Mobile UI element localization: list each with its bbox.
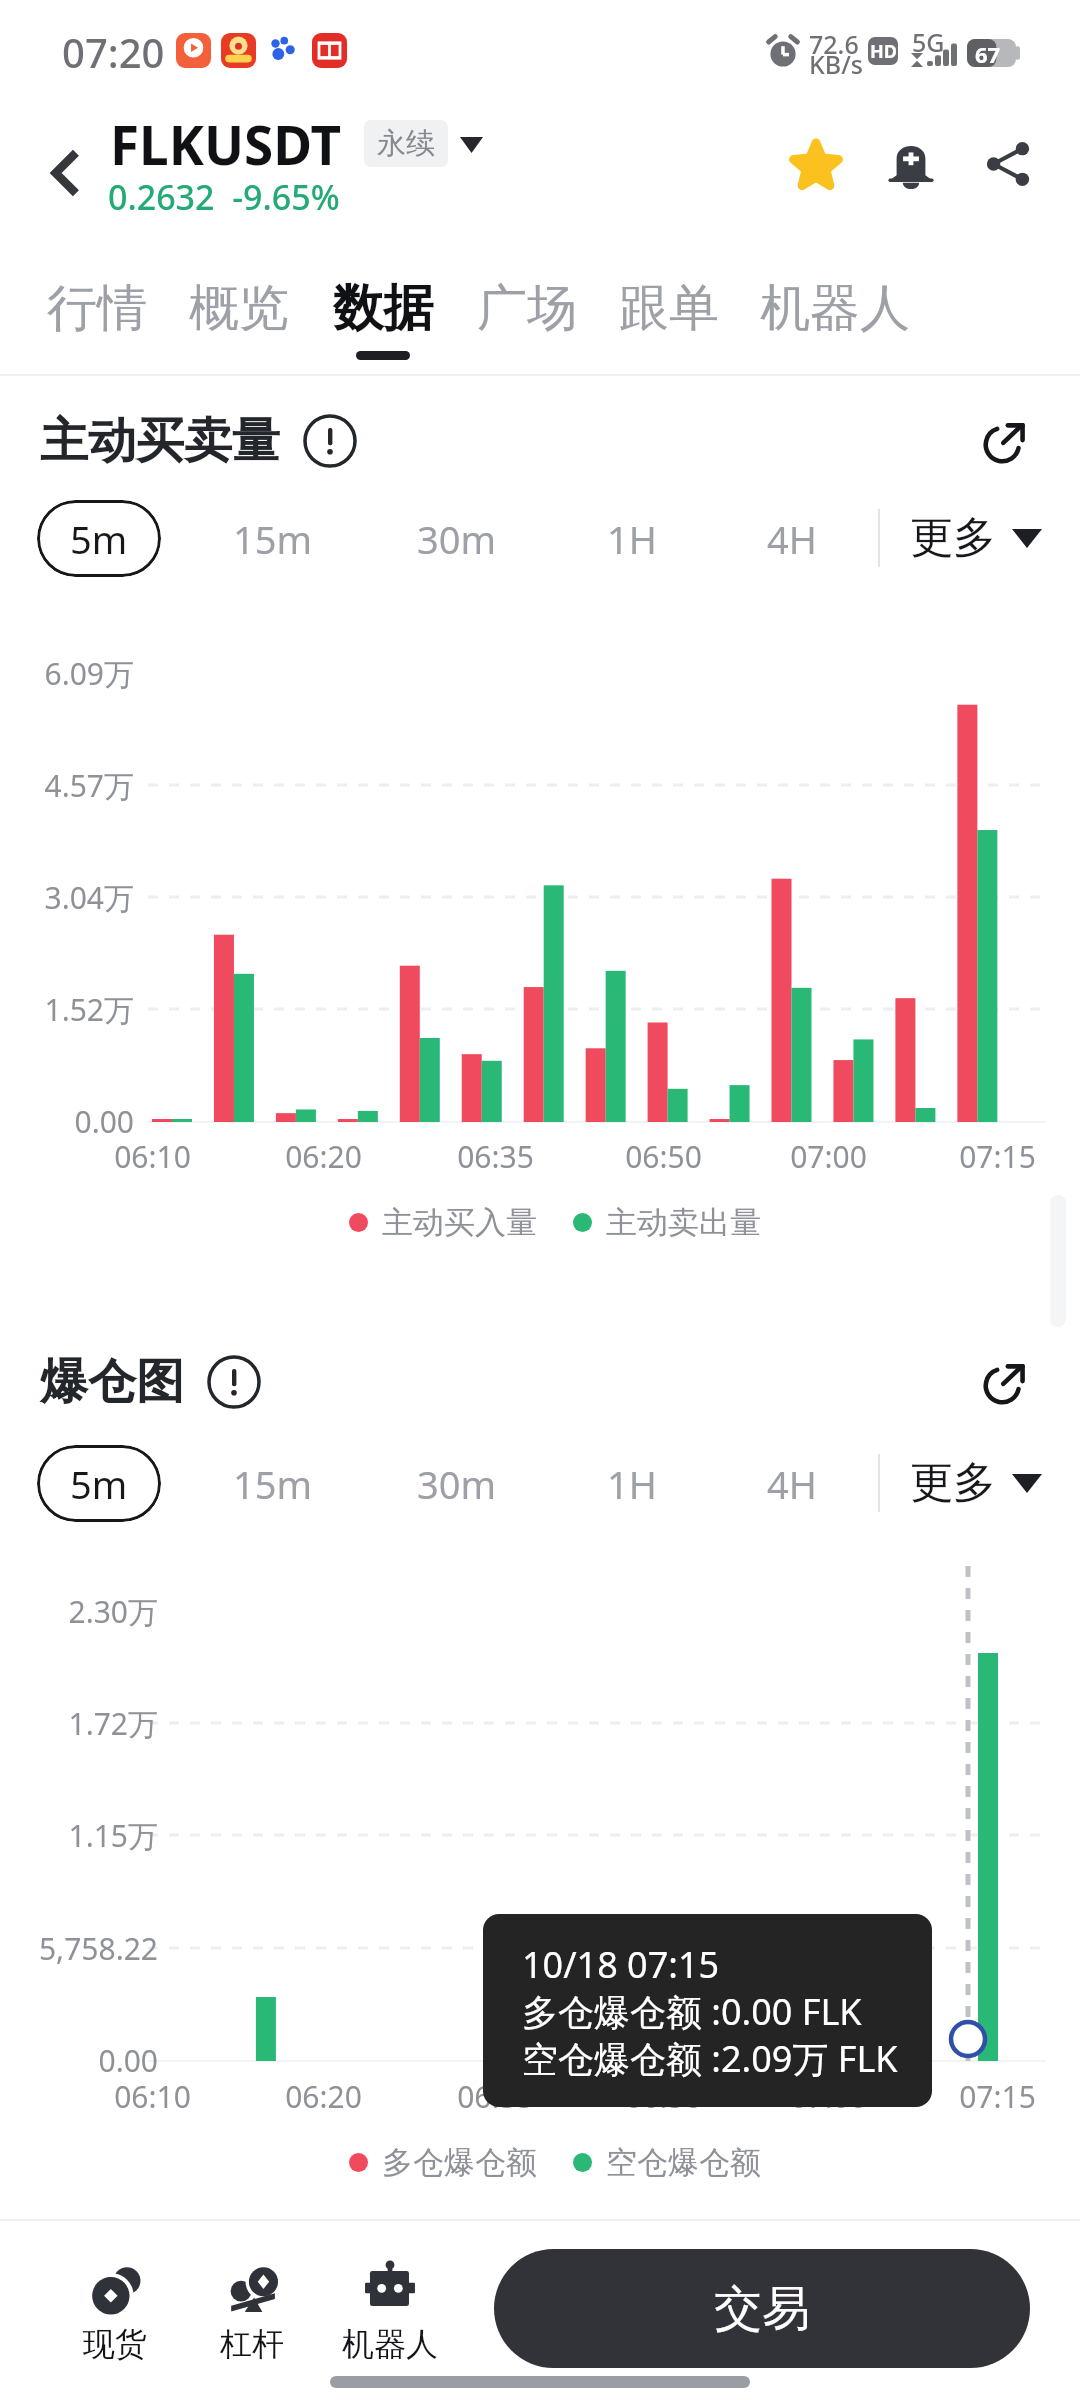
button[interactable]: 广场	[458, 277, 596, 371]
staticText: 主动买入量	[382, 1203, 537, 1242]
staticText: 2.30万	[68, 1591, 158, 1632]
staticText: 现货	[83, 2324, 147, 2364]
button[interactable]: 机器人	[744, 277, 926, 371]
staticText: 15m	[233, 1458, 313, 1510]
staticText: 1.52万	[44, 989, 134, 1030]
staticText: 概览	[189, 277, 289, 340]
staticText: 07:00	[790, 1136, 867, 1177]
staticText: HD	[870, 39, 897, 64]
staticText: 07:15	[959, 1136, 1036, 1177]
button[interactable]: 5m	[37, 1445, 161, 1522]
button[interactable]: 1H	[570, 1445, 694, 1522]
staticText: 3.04万	[44, 877, 134, 918]
staticText: 06:35	[457, 2076, 534, 2117]
staticText: 30m	[417, 1458, 497, 1510]
staticText: 5,758.22	[38, 1928, 158, 1969]
staticText: 4H	[767, 1458, 817, 1510]
button[interactable]: 跟单	[600, 277, 738, 371]
button[interactable]: Expand chart	[968, 1344, 1044, 1420]
staticText: 1H	[607, 513, 657, 565]
staticText: 1H	[607, 1458, 657, 1510]
staticText: 72.6	[809, 27, 859, 57]
button[interactable]: 4H	[730, 500, 854, 577]
staticText: 07:15	[959, 2076, 1036, 2117]
button[interactable]: 行情	[28, 277, 166, 371]
button[interactable]: Back	[23, 122, 107, 206]
staticText: 杠杆	[220, 2324, 284, 2364]
button[interactable]: Info	[204, 1352, 264, 1412]
staticText: 06:20	[285, 1136, 362, 1177]
staticText: 1.72万	[68, 1703, 158, 1744]
staticText: 06:10	[114, 1136, 191, 1177]
staticText: 机器人	[342, 2324, 438, 2364]
staticText: 6.09万	[44, 653, 134, 694]
staticText: 多仓爆仓额	[382, 2143, 537, 2182]
staticText: 5G	[912, 25, 945, 55]
staticText: 06:35	[457, 1136, 534, 1177]
button[interactable]: Favorite	[768, 116, 864, 212]
staticText: 06:50	[625, 1136, 702, 1177]
button[interactable]: 杠杆	[182, 2248, 322, 2372]
button[interactable]: 5m	[37, 500, 161, 577]
staticText: 5m	[70, 1458, 128, 1510]
staticText: 多仓爆仓额 :0.00 FLK	[522, 1987, 862, 2036]
staticText: 06:50	[625, 2076, 702, 2117]
button[interactable]: 30m	[395, 1445, 519, 1522]
staticText: 0.00	[98, 2040, 158, 2081]
button[interactable]: 现货	[45, 2248, 185, 2372]
button[interactable]: 15m	[211, 500, 335, 577]
staticText: 永续	[377, 125, 435, 162]
staticText: 0.00	[74, 1101, 134, 1142]
button[interactable]: 15m	[211, 1445, 335, 1522]
staticText: 空仓爆仓额 :2.09万 FLK	[522, 2034, 898, 2083]
staticText: 机器人	[760, 277, 910, 340]
button[interactable]: 概览	[170, 277, 308, 371]
staticText: 0.2632 -9.65%	[108, 174, 340, 220]
staticText: 5m	[70, 513, 128, 565]
staticText: 交易	[714, 2279, 810, 2339]
staticText: 更多	[910, 1456, 996, 1510]
staticText: KB/s	[809, 47, 863, 77]
staticText: 1.15万	[68, 1815, 158, 1856]
staticText: 空仓爆仓额	[606, 2143, 761, 2182]
staticText: 爆仓图	[40, 1352, 184, 1412]
staticText: 主动买卖量	[40, 411, 280, 471]
button[interactable]: 更多	[902, 1448, 1050, 1518]
staticText: 更多	[910, 511, 996, 565]
staticText: 4H	[767, 513, 817, 565]
staticText: 67	[975, 39, 1001, 67]
button[interactable]: 数据	[314, 277, 452, 371]
button[interactable]: 交易	[494, 2249, 1030, 2368]
staticText: 06:20	[285, 2076, 362, 2117]
button[interactable]: Info	[300, 411, 360, 471]
button[interactable]: 4H	[730, 1445, 854, 1522]
button[interactable]: Expand chart	[968, 403, 1044, 479]
staticText: 15m	[233, 513, 313, 565]
staticText: 30m	[417, 513, 497, 565]
button[interactable]: Price alert	[863, 116, 959, 212]
staticText: 广场	[477, 277, 577, 340]
button[interactable]: 更多	[902, 503, 1050, 573]
button[interactable]: 1H	[570, 500, 694, 577]
staticText: FLKUSDT	[110, 108, 341, 178]
staticText: 4.57万	[44, 765, 134, 806]
staticText: 主动卖出量	[606, 1203, 761, 1242]
staticText: 10/18 07:15	[522, 1940, 720, 1989]
staticText: 跟单	[619, 277, 719, 340]
staticText: 07:20	[62, 25, 165, 79]
button[interactable]: Share	[960, 116, 1056, 212]
staticText: 06:10	[114, 2076, 191, 2117]
button[interactable]: 机器人	[320, 2248, 460, 2372]
button[interactable]: 30m	[395, 500, 519, 577]
staticText: 07:00	[790, 2076, 867, 2117]
staticText: 数据	[333, 277, 433, 340]
staticText: 行情	[47, 277, 147, 340]
